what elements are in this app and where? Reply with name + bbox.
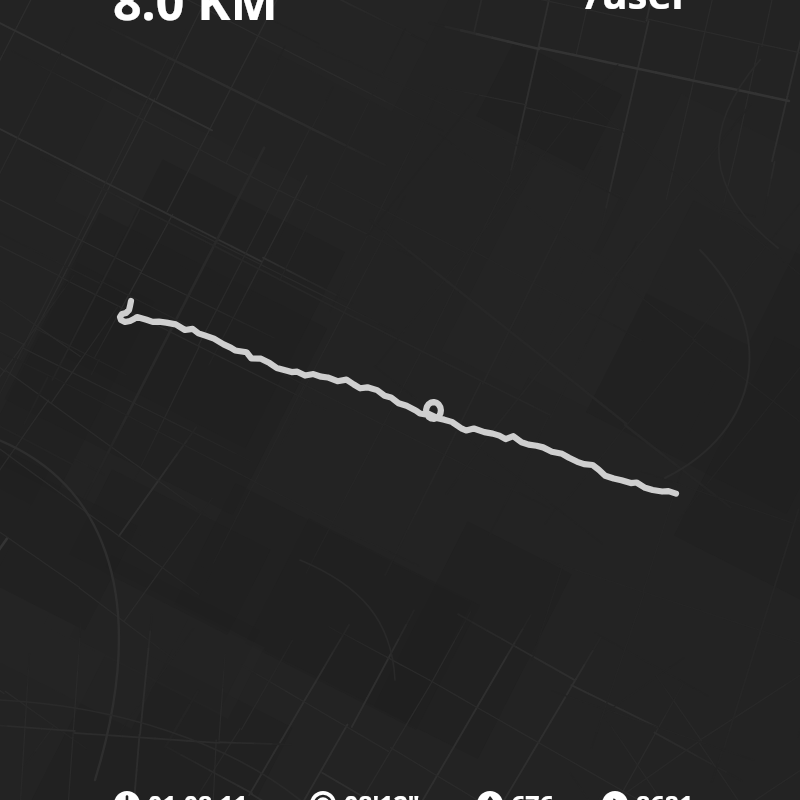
button[interactable]: Calories	[475, 785, 556, 800]
other: Steps	[602, 791, 628, 800]
other: Calories	[477, 791, 503, 800]
button[interactable]: 8.0 KM	[113, 0, 278, 35]
button[interactable]: /user	[585, 0, 690, 20]
button[interactable]: Average pace	[308, 785, 422, 800]
staticText: 8.0 KM	[113, 0, 278, 35]
staticText: 01:08:11	[148, 787, 248, 800]
staticText: 8681	[636, 787, 694, 800]
staticText: 676	[511, 787, 554, 800]
button[interactable]: Duration	[112, 785, 250, 800]
button[interactable]: Steps	[600, 785, 696, 800]
staticText: /user	[585, 0, 690, 20]
button[interactable]: Route map	[0, 0, 800, 800]
other: Average pace	[310, 791, 336, 800]
staticText: 08'12"	[344, 787, 420, 800]
other: Duration	[114, 791, 140, 800]
